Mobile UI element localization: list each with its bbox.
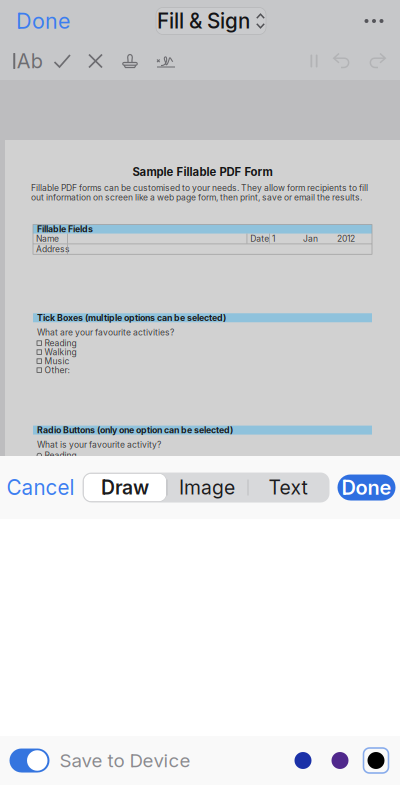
staticText: Tick Boxes (multiple options can be sele… [37, 312, 226, 323]
staticText: Music [44, 356, 69, 366]
staticText: Walking [44, 347, 76, 357]
staticText: Radio Buttons (only one option can be se… [37, 425, 233, 435]
staticText: Address [36, 244, 70, 254]
button[interactable]: Text annotation [10, 45, 46, 77]
button[interactable]: Image [166, 473, 247, 501]
button[interactable]: Cross mark [79, 45, 112, 77]
button[interactable]: Save to Device [9, 738, 190, 782]
staticText: Save to Device [59, 749, 190, 772]
staticText: Done [16, 8, 70, 34]
staticText: 2012 [337, 233, 355, 244]
staticText: Fillable Fields [37, 224, 93, 234]
staticText: 1 [272, 233, 275, 244]
staticText: Text [268, 476, 307, 499]
staticText: Sample Fillable PDF Form [132, 165, 272, 179]
staticText: Jan [303, 233, 318, 244]
button[interactable]: Checkmark [46, 45, 79, 77]
button[interactable]: Fill & Sign [156, 7, 266, 34]
staticText: Name [36, 233, 59, 244]
button[interactable]: Cancel [6, 469, 74, 505]
button[interactable]: Stamp [112, 45, 148, 77]
staticText: What is your favourite activity? [37, 440, 161, 450]
button[interactable]: Draw [83, 473, 166, 501]
staticText: Done [341, 475, 391, 500]
staticText: Reading [44, 450, 76, 461]
button[interactable]: Black ink, selected [363, 748, 388, 773]
staticText: What are your favourite activities? [37, 327, 174, 338]
staticText: Cancel [6, 475, 74, 500]
staticText: Reading [44, 338, 76, 348]
staticText: Ab [17, 49, 43, 73]
button[interactable]: Text [247, 473, 328, 501]
staticText: Fillable PDF forms can be customised to … [31, 183, 368, 203]
staticText: Image [179, 476, 235, 499]
button[interactable]: More [352, 0, 396, 42]
staticText: Draw [101, 476, 149, 499]
button[interactable]: Redo [360, 45, 394, 77]
staticText: Other: [44, 365, 69, 375]
button[interactable]: Signature [148, 45, 184, 77]
button[interactable]: Done [16, 0, 70, 42]
staticText: Fill & Sign [157, 8, 250, 33]
staticText: Date [250, 233, 269, 244]
button[interactable]: Done [337, 474, 395, 500]
button[interactable]: Blue ink [289, 747, 316, 774]
button[interactable]: Purple ink [326, 747, 353, 774]
button[interactable]: Undo [324, 45, 360, 77]
